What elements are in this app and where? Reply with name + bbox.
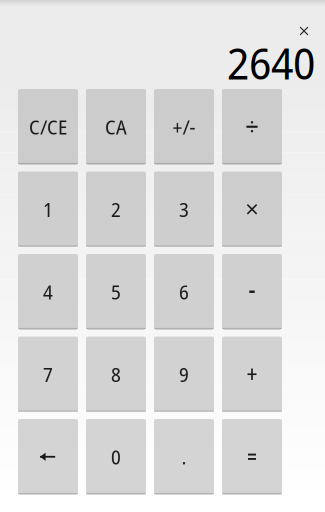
button[interactable]: Minus xyxy=(222,254,282,329)
staticText: 4 xyxy=(43,278,53,305)
staticText: 6 xyxy=(179,278,189,305)
button[interactable]: Divide xyxy=(222,89,282,164)
button[interactable]: Close xyxy=(294,21,314,41)
button[interactable]: 7 xyxy=(18,336,78,412)
button[interactable]: 2 xyxy=(86,171,146,247)
button[interactable]: . xyxy=(154,419,214,494)
button[interactable]: 3 xyxy=(154,171,214,247)
button[interactable]: Equals xyxy=(222,419,282,494)
staticText: 9 xyxy=(179,361,189,388)
staticText: 5 xyxy=(111,278,121,305)
button[interactable]: Backspace xyxy=(18,419,78,494)
staticText: . xyxy=(181,443,186,470)
staticText: C/CE xyxy=(29,113,67,140)
staticText: +/- xyxy=(172,113,195,140)
staticText: 2 xyxy=(111,196,121,223)
staticText: 8 xyxy=(111,361,121,388)
button[interactable]: 9 xyxy=(154,336,214,412)
staticText: CA xyxy=(105,113,127,140)
staticText: 2640 xyxy=(227,32,315,92)
button[interactable]: 6 xyxy=(154,254,214,329)
button[interactable]: 8 xyxy=(86,336,146,412)
button[interactable]: Multiply xyxy=(222,171,282,247)
button[interactable]: CA xyxy=(86,89,146,164)
staticText: 7 xyxy=(43,361,53,388)
button[interactable]: 1 xyxy=(18,171,78,247)
button[interactable]: 5 xyxy=(86,254,146,329)
staticText: 1 xyxy=(43,196,53,223)
button[interactable]: 0 xyxy=(86,419,146,494)
button[interactable]: Plus xyxy=(222,336,282,412)
staticText: 0 xyxy=(111,443,121,470)
button[interactable]: C/CE xyxy=(18,89,78,164)
staticText: 3 xyxy=(179,196,189,223)
button[interactable]: +/- xyxy=(154,89,214,164)
button[interactable]: 4 xyxy=(18,254,78,329)
